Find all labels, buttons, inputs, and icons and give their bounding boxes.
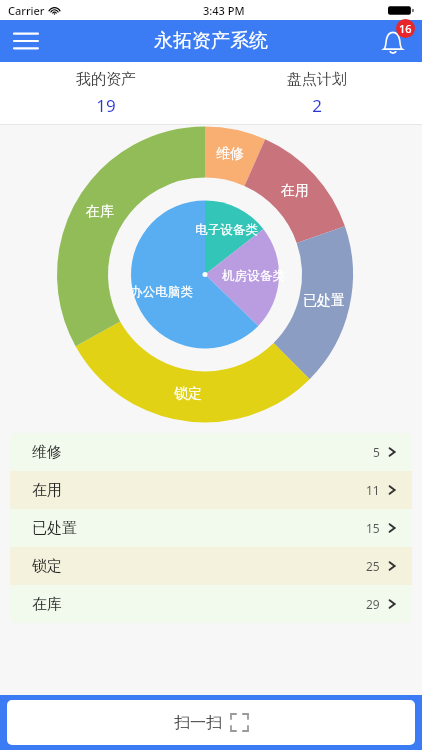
staticText: 29 — [366, 596, 380, 612]
staticText: 永拓资产系统 — [154, 29, 268, 53]
staticText: 11 — [366, 482, 380, 498]
staticText: 25 — [366, 558, 380, 574]
staticText: 扫一扫 — [174, 713, 222, 733]
staticText: 15 — [366, 520, 380, 536]
staticText: 锁定 — [32, 557, 62, 576]
button[interactable]: Menu — [6, 21, 46, 61]
button[interactable]: 在用 — [10, 471, 412, 509]
button[interactable]: 盘点计划 — [211, 62, 422, 124]
staticText: 5 — [373, 444, 380, 460]
staticText: 在用 — [281, 182, 309, 200]
staticText: 19 — [96, 94, 116, 117]
staticText: 16 — [399, 21, 412, 36]
button[interactable]: 扫一扫 — [7, 700, 415, 745]
staticText: 已处置 — [32, 519, 77, 538]
staticText: 2 — [312, 94, 322, 117]
staticText: 盘点计划 — [287, 70, 347, 89]
button[interactable]: 已处置 — [10, 509, 412, 547]
staticText: 办公电脑类 — [130, 284, 193, 300]
button[interactable]: 在库 — [10, 585, 412, 623]
staticText: 在库 — [32, 595, 62, 614]
staticText: 在用 — [32, 481, 62, 500]
staticText: 维修 — [216, 145, 244, 163]
button[interactable]: 锁定 — [10, 547, 412, 585]
button[interactable]: Notifications — [372, 20, 414, 62]
staticText: 维修 — [32, 443, 62, 462]
staticText: 机房设备类 — [222, 268, 285, 284]
staticText: 电子设备类 — [195, 222, 258, 238]
staticText: 3:43 PM — [203, 3, 245, 18]
button[interactable]: 我的资产 — [0, 62, 211, 124]
button[interactable]: 维修 — [10, 433, 412, 471]
staticText: 我的资产 — [76, 70, 136, 89]
staticText: 锁定 — [174, 385, 202, 403]
staticText: 在库 — [86, 203, 114, 221]
staticText: Carrier — [8, 3, 45, 18]
staticText: 已处置 — [303, 292, 345, 310]
